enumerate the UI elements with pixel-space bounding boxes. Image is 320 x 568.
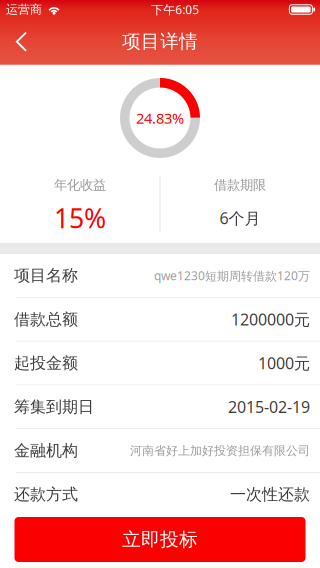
staticText: 借款总额 (14, 309, 78, 329)
staticText: 起投金额 (14, 353, 78, 373)
staticText: 还款方式 (14, 485, 78, 504)
staticText: 项目详情 (122, 30, 198, 53)
button[interactable]: 还款方式 (0, 473, 320, 517)
button[interactable]: 立即投标 (14, 517, 305, 562)
button[interactable]: 借款总额 (0, 298, 320, 342)
staticText: 立即投标 (122, 528, 198, 551)
staticText: 1200000元 (231, 309, 310, 330)
staticText: 2015-02-19 (228, 396, 310, 417)
staticText: qwe1230短期周转借款120万 (154, 267, 310, 283)
staticText: 年化收益 (54, 177, 106, 193)
staticText: 15% (54, 200, 106, 236)
button[interactable]: 金融机构 (0, 429, 320, 473)
staticText: 借款期限 (214, 177, 266, 193)
staticText: 一次性还款 (230, 485, 310, 504)
staticText: 24.83% (136, 108, 184, 128)
staticText: 筹集到期日 (14, 397, 94, 417)
staticText: 下午6:05 (151, 1, 199, 17)
staticText: 6个月 (219, 207, 260, 229)
button[interactable]: 起投金额 (0, 342, 320, 385)
staticText: 金融机构 (14, 441, 78, 461)
button[interactable]: 项目名称 (0, 254, 320, 298)
staticText: 运营商 (6, 2, 42, 17)
staticText: 1000元 (258, 352, 310, 374)
staticText: 项目名称 (14, 266, 78, 285)
button[interactable]: 筹集到期日 (0, 385, 320, 429)
staticText: 河南省好上加好投资担保有限公司 (130, 443, 310, 458)
button[interactable]: 返回 (0, 19, 44, 63)
